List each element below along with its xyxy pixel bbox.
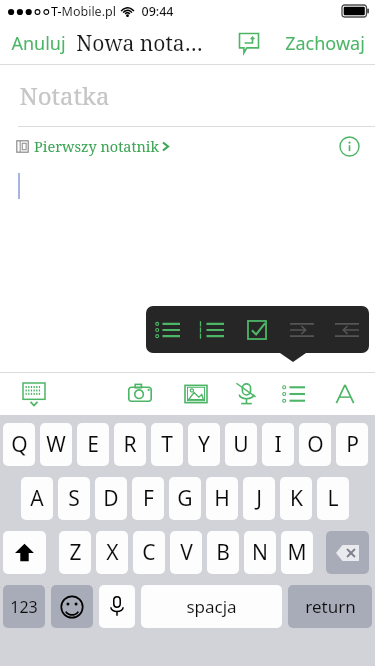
staticText: Notatka bbox=[19, 79, 110, 112]
staticText: S bbox=[68, 484, 80, 513]
staticText: G bbox=[177, 484, 193, 513]
button[interactable]: R bbox=[114, 423, 146, 466]
button[interactable]: Note info bbox=[337, 134, 375, 158]
button[interactable]: Y bbox=[188, 423, 220, 466]
button[interactable]: Q bbox=[3, 423, 35, 466]
staticText: U bbox=[233, 430, 249, 459]
button[interactable]: Camera bbox=[120, 374, 160, 414]
button[interactable]: Numbered list bbox=[190, 306, 234, 353]
button[interactable]: Text format bbox=[325, 374, 365, 414]
staticText: J bbox=[256, 484, 262, 513]
button[interactable]: Pierwszy notatnik bbox=[0, 132, 177, 160]
button[interactable]: Checklist bbox=[234, 306, 279, 353]
staticText: M bbox=[287, 538, 307, 567]
button[interactable]: Delete bbox=[326, 531, 369, 574]
button[interactable]: F bbox=[132, 477, 164, 520]
button[interactable]: List bbox=[274, 374, 314, 414]
staticText: K bbox=[290, 484, 303, 513]
button[interactable]: T bbox=[151, 423, 183, 466]
button[interactable]: K bbox=[280, 477, 312, 520]
button[interactable]: Photo bbox=[176, 374, 216, 414]
staticText: Z bbox=[69, 538, 82, 567]
button[interactable]: Hide keyboard bbox=[14, 374, 54, 414]
staticText: V bbox=[180, 538, 193, 567]
button[interactable]: Anuluj bbox=[0, 25, 72, 62]
staticText: 09:44 bbox=[141, 3, 174, 20]
button[interactable]: Emoji bbox=[51, 585, 93, 628]
button[interactable]: A bbox=[21, 477, 53, 520]
button[interactable]: E bbox=[77, 423, 109, 466]
button[interactable]: Shift bbox=[3, 531, 46, 574]
staticText: Zachowaj bbox=[285, 31, 365, 56]
staticText: W bbox=[46, 430, 66, 459]
staticText: P bbox=[346, 430, 359, 459]
staticText: T-Mobile.pl bbox=[51, 3, 116, 20]
button[interactable]: V bbox=[170, 531, 202, 574]
button[interactable]: S bbox=[58, 477, 90, 520]
button[interactable]: L bbox=[317, 477, 349, 520]
staticText: N bbox=[252, 538, 268, 567]
staticText: Y bbox=[198, 430, 210, 459]
staticText: X bbox=[106, 538, 119, 567]
button[interactable]: J bbox=[243, 477, 275, 520]
staticText: Anuluj bbox=[11, 31, 66, 56]
button[interactable]: 123 bbox=[3, 585, 45, 628]
button[interactable]: H bbox=[206, 477, 238, 520]
staticText: 123 bbox=[10, 596, 38, 618]
button[interactable]: B bbox=[207, 531, 239, 574]
button[interactable]: Zachowaj bbox=[279, 25, 375, 62]
button[interactable]: C bbox=[133, 531, 165, 574]
button[interactable]: Indent bbox=[279, 306, 324, 353]
staticText: return bbox=[305, 595, 356, 618]
staticText: T bbox=[161, 430, 173, 459]
button[interactable]: W bbox=[40, 423, 72, 466]
button[interactable]: P bbox=[336, 423, 368, 466]
staticText: Q bbox=[11, 430, 28, 459]
staticText: F bbox=[143, 484, 154, 513]
button[interactable]: X bbox=[96, 531, 128, 574]
staticText: H bbox=[214, 484, 230, 513]
staticText: spacja bbox=[186, 595, 237, 618]
button[interactable]: Bulleted list bbox=[146, 306, 190, 353]
button[interactable]: spacja bbox=[141, 585, 282, 628]
button[interactable]: D bbox=[95, 477, 127, 520]
button[interactable]: Dictate bbox=[99, 585, 135, 628]
staticText: A bbox=[30, 484, 44, 513]
button[interactable]: Z bbox=[59, 531, 91, 574]
button[interactable]: I bbox=[262, 423, 294, 466]
staticText: R bbox=[123, 430, 137, 459]
staticText: Nowa nota… bbox=[76, 29, 203, 58]
staticText: C bbox=[142, 538, 156, 567]
staticText: Pierwszy notatnik bbox=[34, 136, 159, 156]
button[interactable]: Share note bbox=[234, 28, 264, 58]
button[interactable]: N bbox=[244, 531, 276, 574]
staticText: O bbox=[307, 430, 324, 459]
staticText: L bbox=[327, 484, 339, 513]
button[interactable]: O bbox=[299, 423, 331, 466]
staticText: I bbox=[274, 430, 282, 459]
button[interactable]: U bbox=[225, 423, 257, 466]
button[interactable]: Audio bbox=[226, 374, 266, 414]
button[interactable]: Outdent bbox=[324, 306, 369, 353]
staticText: D bbox=[103, 484, 119, 513]
button[interactable]: M bbox=[281, 531, 313, 574]
staticText: E bbox=[87, 430, 99, 459]
staticText: B bbox=[216, 538, 230, 567]
button[interactable]: return bbox=[288, 585, 372, 628]
button[interactable]: G bbox=[169, 477, 201, 520]
